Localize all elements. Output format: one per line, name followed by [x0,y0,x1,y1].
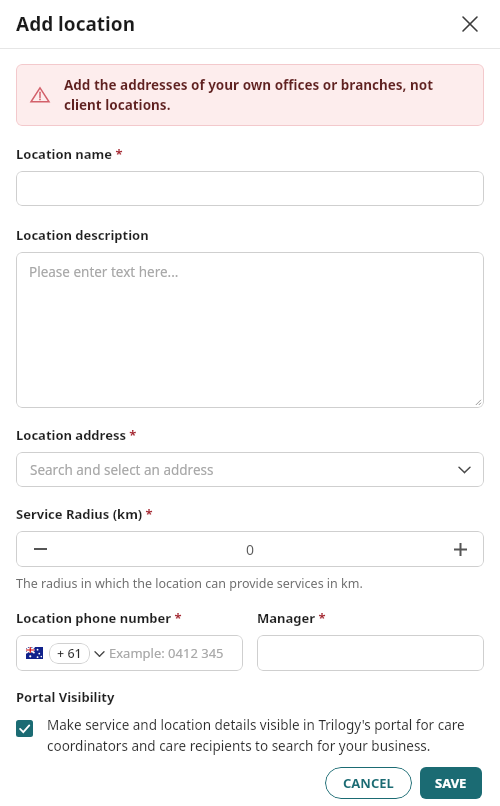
staticText: + 61 [57,645,82,662]
staticText: Search and select an address [30,461,214,479]
staticText: Add location [16,11,135,37]
button[interactable]: Make service and location details visibl… [16,716,484,755]
staticText: Service Radius (km) * [16,505,153,523]
button[interactable]: Decrease radius [16,531,484,567]
button[interactable]: SAVE [420,767,482,799]
staticText: Manager * [257,609,326,627]
button[interactable] [257,635,484,671]
staticText: Example: 0412 345 [109,644,224,662]
staticText: Make service and location details visibl… [47,716,484,755]
button[interactable]: CANCEL [325,767,412,799]
button[interactable]: Increase radius [436,531,484,567]
staticText: Portal Visibility [16,688,115,706]
staticText: SAVE [435,774,467,792]
staticText: CANCEL [343,774,394,792]
button[interactable]: Search and select an address [16,452,484,487]
staticText: Location name * [16,145,123,163]
staticText: 0 [246,540,255,559]
staticText: Location phone number * [16,609,182,627]
staticText: Add the addresses of your own offices or… [64,76,470,114]
staticText: The radius in which the location can pro… [16,575,363,592]
staticText: Please enter text here... [29,263,179,281]
staticText: Location address * [16,426,137,444]
button[interactable]: + 61 [16,635,243,671]
button[interactable]: Close [454,8,486,40]
button[interactable] [16,171,484,206]
button[interactable]: Please enter text here... [16,252,484,408]
button[interactable]: Decrease radius [16,531,64,567]
staticText: Location description [16,226,149,244]
